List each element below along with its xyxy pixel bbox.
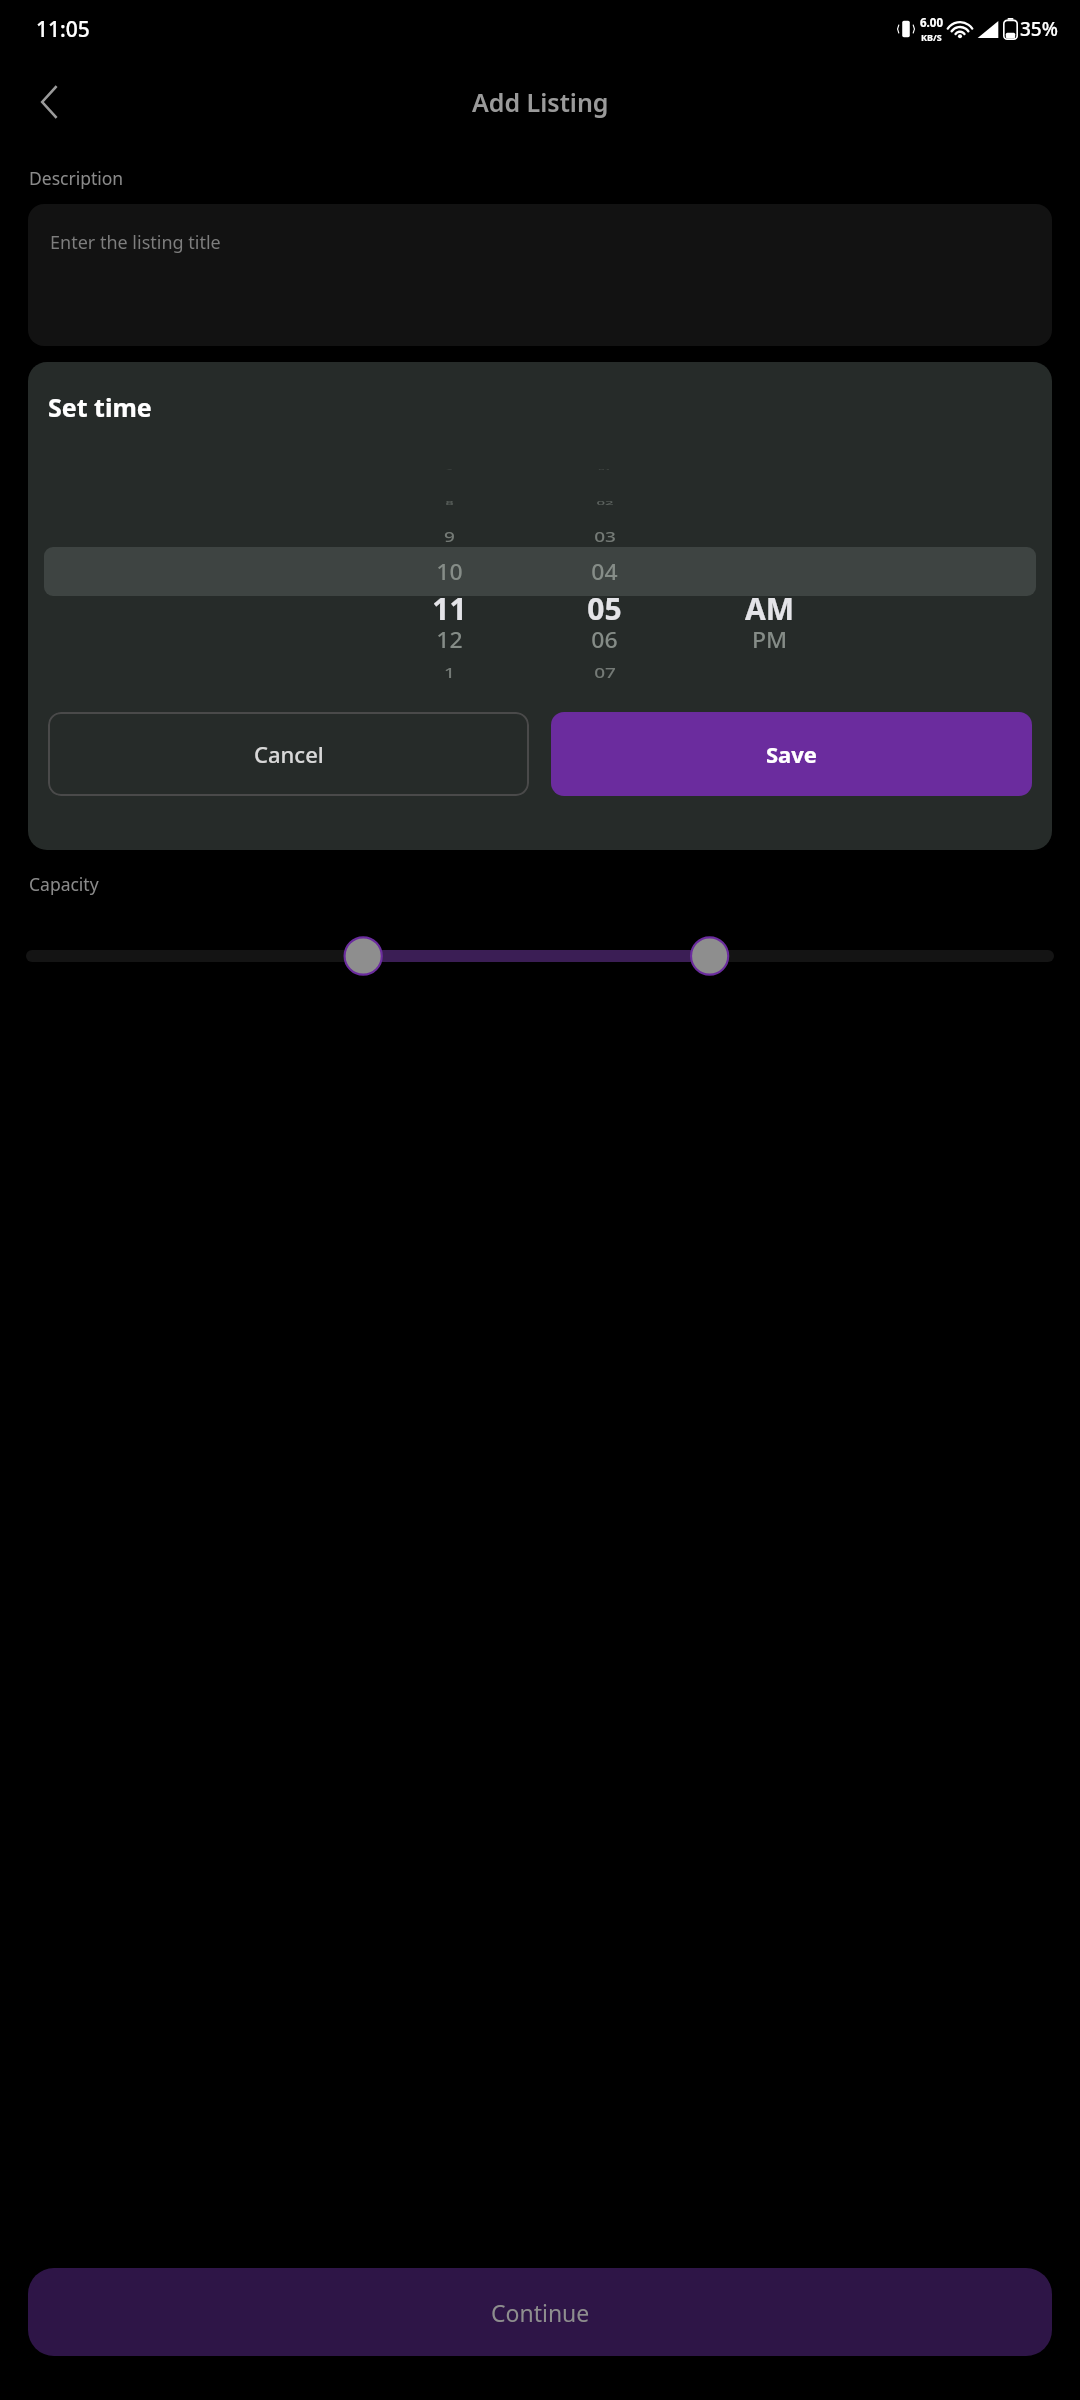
staticText: 7 [446, 468, 453, 471]
staticText: 11 [432, 588, 467, 622]
staticText: Add Listing [472, 85, 609, 119]
button[interactable]: Enter the listing title [28, 204, 1052, 346]
staticText: Cancel [254, 739, 324, 769]
staticText: 6.00 [920, 15, 943, 31]
staticText: Capacity [29, 872, 99, 896]
staticText: 03 [594, 527, 616, 547]
staticText: 02 [596, 499, 614, 507]
button[interactable]: Save [551, 712, 1032, 796]
staticText: 9 [444, 527, 455, 547]
button[interactable] [0, 926, 1080, 986]
staticText: 06 [591, 625, 618, 654]
staticText: 35% [1020, 16, 1058, 42]
staticText: Save [766, 739, 817, 769]
staticText: 8 [445, 499, 454, 507]
button[interactable]: 7 [372, 452, 527, 690]
button[interactable]: Back [18, 70, 82, 134]
staticText: 12 [436, 625, 463, 654]
staticText: 07 [594, 663, 616, 683]
staticText: Continue [491, 2297, 590, 2328]
staticText: 04 [591, 557, 618, 586]
staticText: 1 [444, 663, 455, 683]
staticText: AM [745, 588, 795, 622]
button[interactable]: AM [682, 452, 857, 690]
staticText: 01 [598, 468, 611, 471]
button[interactable]: Continue [28, 2268, 1052, 2356]
staticText: Description [29, 166, 124, 190]
staticText: Enter the listing title [50, 230, 221, 255]
staticText: Set time [48, 390, 152, 424]
button[interactable]: 01 [527, 452, 682, 690]
staticText: 05 [587, 588, 622, 622]
staticText: PM [752, 625, 788, 654]
staticText: KB/S [921, 31, 942, 43]
staticText: 11:05 [36, 15, 90, 44]
button[interactable]: Cancel [48, 712, 529, 796]
staticText: 10 [436, 557, 463, 586]
